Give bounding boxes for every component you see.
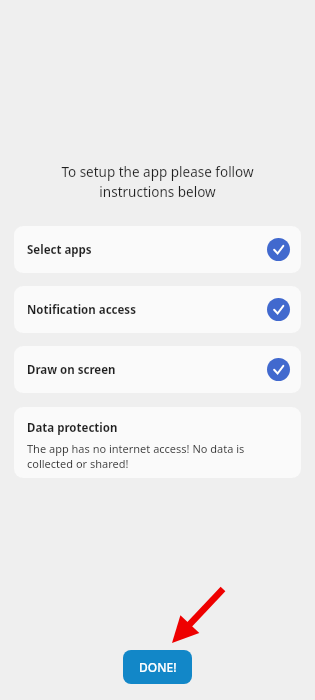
staticText: Draw on screen (27, 362, 116, 378)
button[interactable]: Data protection (14, 407, 301, 478)
staticText: Data protection (27, 420, 118, 436)
staticText: Notification access (27, 302, 136, 318)
staticText: The app has no internet access! No data … (27, 441, 288, 471)
staticText: Select apps (27, 242, 92, 258)
staticText: DONE! (139, 659, 177, 675)
button[interactable]: Done (123, 650, 192, 684)
button[interactable]: Notification access (14, 286, 301, 333)
button[interactable]: Draw on screen (14, 346, 301, 393)
staticText: To setup the app please follow instructi… (28, 163, 287, 201)
button[interactable]: Select apps (14, 226, 301, 273)
